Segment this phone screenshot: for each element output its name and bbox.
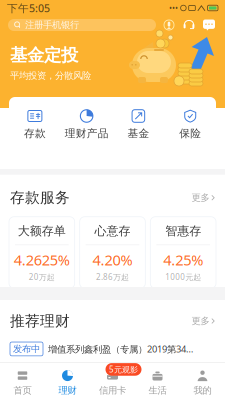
button[interactable]: 信用卡 [90,363,135,396]
staticText: 下午5:05 [7,1,50,15]
staticText: 基金 [127,127,149,140]
button[interactable]: 智惠存 [150,217,216,288]
button[interactable]: 生活 [135,363,180,396]
staticText: 平均投资，分散风险 [10,70,91,81]
button[interactable]: 发布中 [0,330,225,356]
staticText: 存款 [24,127,46,140]
staticText: 首页 [13,385,31,396]
staticText: 理财产品 [65,127,109,140]
staticText: 2.86万起 [96,272,129,282]
staticText: 4.25% [163,250,203,270]
button[interactable]: 消息 [203,19,215,31]
button[interactable]: 大额存单 [9,217,75,288]
button[interactable]: 心意存 [80,217,145,288]
staticText: 存款服务 [10,189,70,207]
staticText: 心意存 [94,224,130,238]
staticText: 更多 [191,192,209,203]
staticText: 4.2625% [14,250,70,270]
button[interactable]: 理财 [45,363,90,396]
staticText: ••• [169,3,178,13]
button[interactable]: 更多 [191,192,215,203]
staticText: 理财 [58,385,76,396]
staticText: 基金定投 [10,45,78,66]
staticText: 智惠存 [165,224,201,238]
button[interactable]: 我的 [180,363,225,396]
staticText: 推荐理财 [10,312,70,330]
staticText: 4.20% [92,250,132,270]
button[interactable]: 更多 [191,315,215,327]
staticText: 增值系列鑫利盈（专属）2019第34… [48,343,193,355]
staticText: 发布中 [13,343,40,355]
staticText: 大额存单 [18,224,66,238]
button[interactable]: 理财产品 [61,109,113,140]
staticText: 更多 [191,315,209,327]
button[interactable]: 基金 [112,109,164,140]
button[interactable]: 注册手机银行 [8,19,156,31]
staticText: 信用卡 [99,385,126,396]
staticText: 1000元起 [165,272,201,282]
staticText: 保险 [179,127,201,140]
staticText: 20万起 [29,272,55,282]
button[interactable]: 客服 [183,19,195,31]
button[interactable]: 语音 [163,19,175,31]
staticText: 5元观影 [109,364,138,375]
button[interactable]: 首页 [0,363,45,396]
button[interactable]: 保险 [164,109,216,140]
button[interactable]: 存款 [9,109,61,140]
staticText: 注册手机银行 [25,19,79,31]
staticText: 我的 [193,385,211,396]
staticText: 生活 [148,385,166,396]
